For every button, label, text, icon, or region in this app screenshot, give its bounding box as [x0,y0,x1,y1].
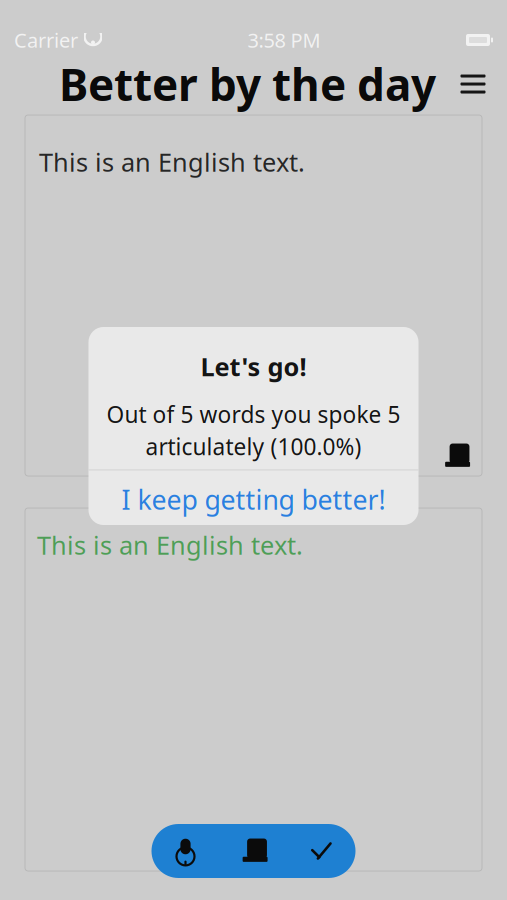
staticText: I keep getting better! [121,482,385,517]
button[interactable]: I keep getting better! [88,470,418,528]
staticText: This is an English text. [37,528,303,562]
button[interactable]: Erase [219,825,287,877]
button[interactable]: Record [151,825,219,877]
button[interactable]: Done [287,825,355,877]
staticText: Out of 5 words you spoke 5 [106,399,400,429]
button[interactable]: Clear text [434,436,478,476]
staticText: Carrier [14,27,78,53]
staticText: Let's go! [200,350,306,383]
staticText: This is an English text. [39,145,305,179]
staticText: articulately (100.0%) [145,431,361,461]
staticText: 3:58 PM [247,27,320,53]
staticText: Better by the day [59,55,436,113]
button[interactable]: Menu [451,62,495,106]
